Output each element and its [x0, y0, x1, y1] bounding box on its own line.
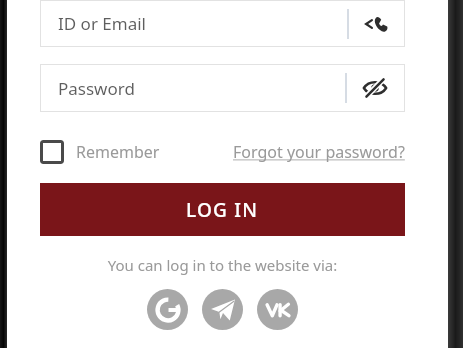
staticText: Remember: [76, 141, 160, 163]
button[interactable]: ID or Email: [40, 0, 405, 47]
staticText: Password: [58, 77, 135, 100]
button[interactable]: Sign in with VK: [257, 289, 298, 330]
button[interactable]: Sign in with Google: [147, 289, 188, 330]
staticText: LOG IN: [186, 197, 259, 223]
button[interactable]: Phone login: [359, 6, 395, 42]
staticText: You can log in to the website via:: [40, 255, 405, 275]
button[interactable]: LOG IN: [40, 183, 405, 236]
button[interactable]: Password: [40, 64, 405, 112]
staticText: Forgot your password?: [233, 141, 405, 163]
button[interactable]: Sign in with Telegram: [202, 289, 243, 330]
button[interactable]: Remember: [40, 140, 160, 164]
staticText: ID or Email: [58, 12, 146, 35]
button[interactable]: Show password: [359, 72, 391, 104]
button[interactable]: Forgot your password?: [233, 141, 405, 163]
